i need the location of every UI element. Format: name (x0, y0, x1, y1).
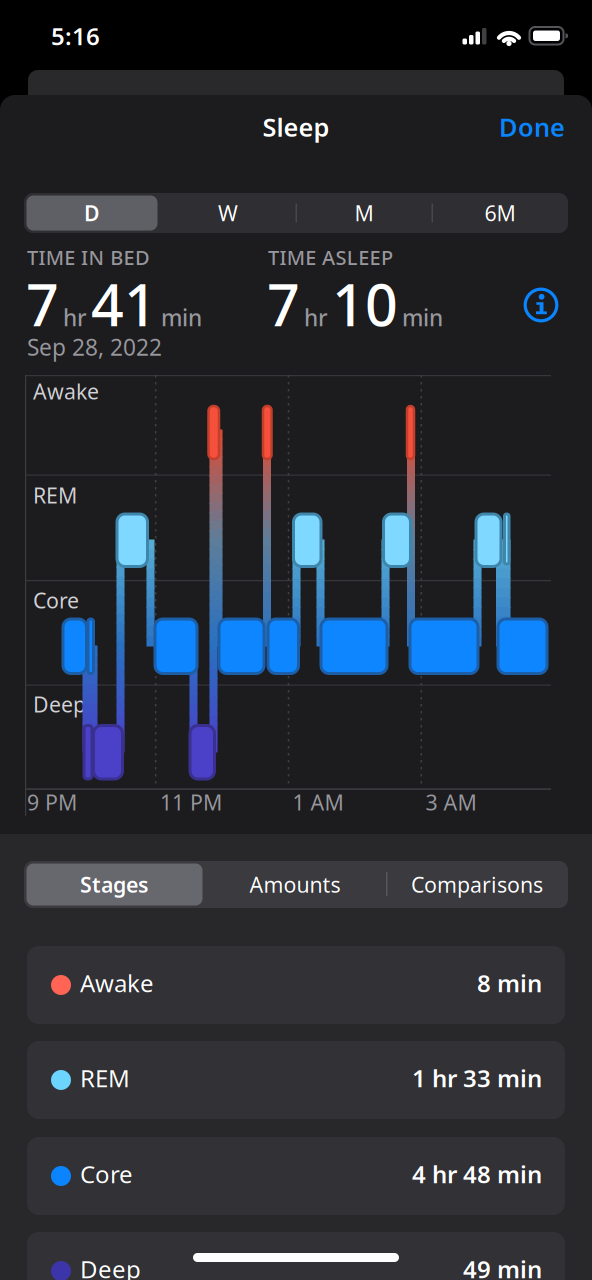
staticText: 9 PM (27, 788, 77, 816)
staticText: W (218, 199, 238, 227)
staticText: Done (499, 110, 565, 144)
staticText: 5:16 (51, 20, 100, 52)
staticText: Stages (80, 870, 149, 899)
staticText: Core (80, 1158, 133, 1190)
button[interactable]: Core (27, 1137, 565, 1215)
button[interactable]: M (304, 195, 424, 230)
button[interactable]: About Sleep (523, 287, 559, 323)
staticText: 1 AM (292, 788, 343, 816)
staticText: REM (33, 481, 77, 509)
button[interactable]: Stages (26, 863, 202, 905)
staticText: hr (63, 302, 87, 333)
staticText: 3 AM (425, 788, 476, 816)
staticText: 7 (26, 266, 59, 342)
staticText: Deep (33, 690, 86, 718)
button[interactable]: Deep (27, 1232, 565, 1280)
staticText: 7 (267, 266, 300, 342)
button[interactable]: W (168, 195, 288, 230)
button[interactable]: Done (499, 110, 565, 144)
staticText: 11 PM (160, 788, 222, 816)
staticText: 41 (91, 266, 157, 342)
staticText: 6M (484, 199, 515, 227)
staticText: 4 hr 48 min (412, 1158, 542, 1190)
staticText: hr (304, 302, 328, 333)
button[interactable]: REM (27, 1041, 565, 1119)
staticText: TIME IN BED (27, 244, 150, 271)
staticText: REM (80, 1062, 130, 1094)
button[interactable]: Amounts (210, 863, 380, 905)
staticText: Awake (80, 967, 154, 999)
staticText: 10 (332, 266, 398, 342)
staticText: 1 hr 33 min (412, 1062, 542, 1094)
button[interactable]: D (26, 195, 157, 230)
staticText: Sep 28, 2022 (27, 332, 162, 362)
staticText: Sleep (262, 110, 329, 144)
staticText: 8 min (477, 967, 542, 999)
button[interactable]: 6M (440, 195, 560, 230)
staticText: D (84, 199, 100, 227)
button[interactable]: Comparisons (386, 863, 568, 905)
button[interactable]: Awake (27, 946, 565, 1024)
staticText: Awake (33, 377, 99, 405)
staticText: Amounts (249, 870, 340, 899)
staticText: min (402, 302, 443, 333)
staticText: TIME ASLEEP (268, 244, 393, 271)
staticText: Core (33, 586, 79, 614)
staticText: min (161, 302, 202, 333)
staticText: 49 min (463, 1253, 542, 1280)
staticText: Deep (80, 1253, 141, 1280)
staticText: Comparisons (411, 870, 543, 899)
staticText: M (354, 199, 373, 227)
